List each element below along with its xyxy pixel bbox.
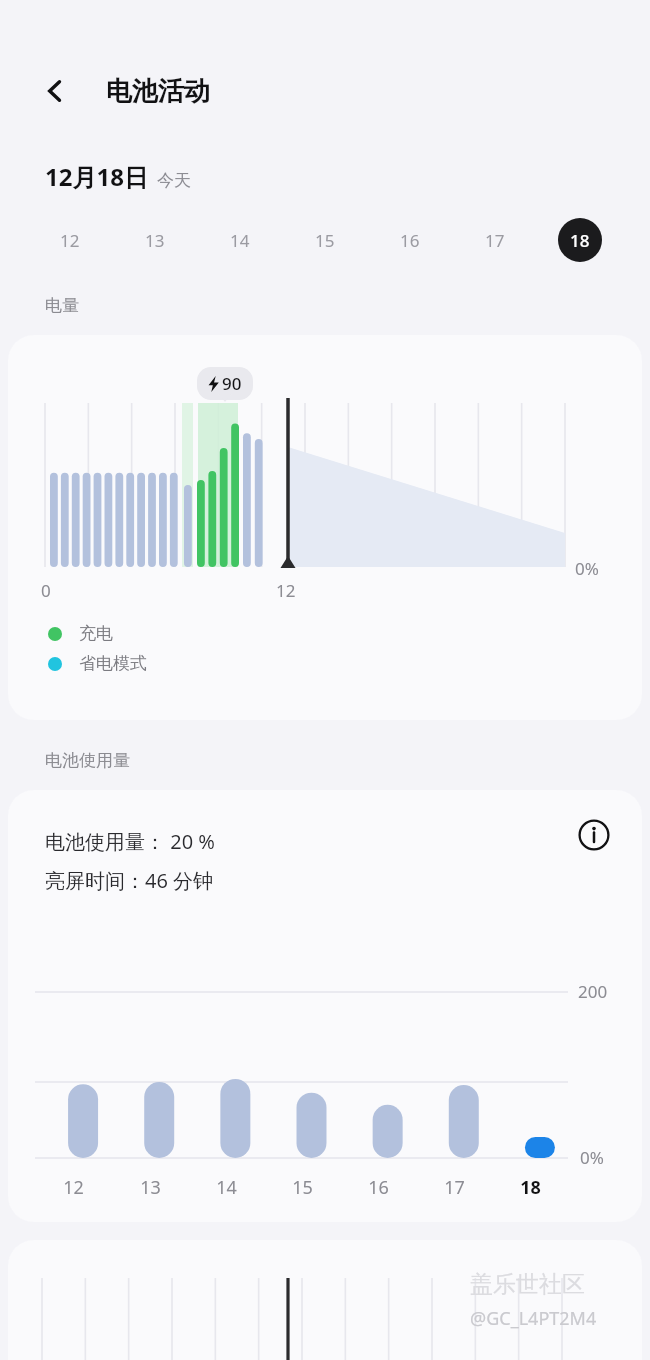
button[interactable]: 17 [452,214,537,266]
button[interactable]: 12 [28,214,112,266]
staticText: 14 [216,1175,237,1200]
staticText: 省电模式 [79,653,147,674]
button[interactable]: 16 [367,214,452,266]
button[interactable]: 0 [8,335,642,720]
button[interactable]: 14 [197,214,282,266]
staticText: 12 [63,1175,84,1200]
button[interactable]: 13 [112,214,197,266]
staticText: 0% [580,1146,604,1169]
staticText: 13 [140,1175,161,1200]
staticText: 12 [60,229,80,252]
staticText: 200 [578,980,608,1003]
staticText: 15 [315,229,335,252]
staticText: 17 [444,1175,465,1200]
staticText: 17 [485,229,505,252]
staticText: 18 [520,1175,541,1200]
button[interactable]: 15 [282,214,367,266]
staticText: 16 [368,1175,389,1200]
staticText: 电池使用量 [45,750,130,771]
button[interactable]: Info [571,812,617,858]
button[interactable]: 18 [537,214,622,266]
staticText: 电池活动 [106,75,210,108]
staticText: 14 [230,229,250,252]
staticText: 亮屏时间：46 分钟 [45,867,214,894]
staticText: 13 [145,229,165,252]
staticText: 12月18日 [45,160,148,193]
staticText: 盖乐世社区 [470,1270,585,1299]
staticText: 电量 [45,295,79,316]
staticText: 16 [400,229,420,252]
staticText: 电池使用量： 20 % [45,828,215,855]
staticText: 12 [276,579,296,602]
staticText: 0 [41,579,51,602]
staticText: 90 [222,372,242,395]
staticText: 今天 [157,170,191,191]
staticText: @GC_L4PT2M4 [470,1306,597,1331]
button[interactable]: Back [26,62,84,120]
staticText: 15 [292,1175,313,1200]
staticText: 0% [575,557,599,580]
staticText: 充电 [79,623,113,644]
staticText: 18 [570,229,590,252]
